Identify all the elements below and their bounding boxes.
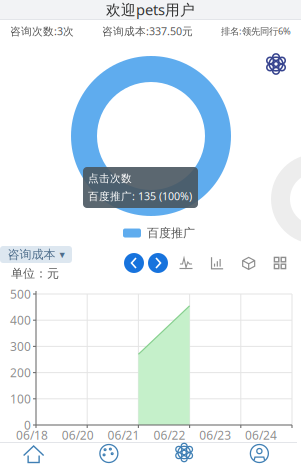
staticText: 百度推广 [147,226,195,240]
staticText: 0 [24,417,31,433]
staticText: 300 [10,338,31,354]
staticText: 100 [10,391,31,407]
button[interactable]: Previous [124,253,144,273]
staticText: 06/22 [153,427,185,443]
staticText: 欢迎pets用户 [106,0,195,19]
staticText: 排名:领先同行6% [221,25,291,37]
staticText: 百度推广: 135 (100%) [88,189,192,203]
staticText: 200 [10,365,31,380]
button[interactable]: Home [0,442,71,464]
button[interactable]: Insights [146,442,222,464]
button[interactable]: Next [148,253,168,273]
staticText: 点击次数 [88,172,132,185]
button[interactable]: Profile [222,442,297,464]
staticText: 06/23 [199,427,231,443]
staticText: 06/24 [245,427,277,443]
staticText: 06/20 [62,427,94,443]
button[interactable]: Bar chart [210,256,224,270]
staticText: 单位：元 [11,266,59,281]
staticText: 06/18 [16,427,48,443]
button[interactable]: 3D chart [242,256,256,270]
button[interactable]: Styles [71,442,146,464]
button[interactable]: Grid view [273,256,287,270]
staticText: 咨询成本:337.50元 [102,24,193,38]
button[interactable]: Line chart [179,256,193,270]
button[interactable]: Molecule [265,53,287,75]
button[interactable]: 咨询成本 [0,246,72,263]
staticText: 500 [10,286,31,302]
staticText: ▾ [59,248,64,260]
staticText: 咨询成本 [7,247,55,262]
staticText: 400 [10,312,31,328]
staticText: 06/21 [108,427,140,443]
staticText: 咨询次数:3次 [10,24,74,38]
